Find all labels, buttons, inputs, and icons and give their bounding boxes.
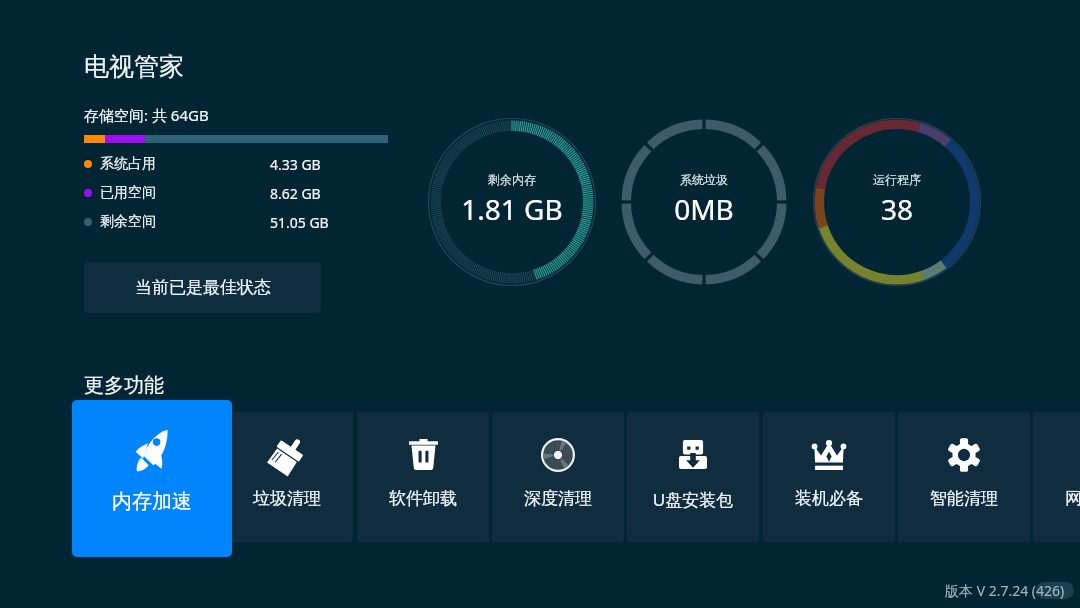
staticText: 版本 V 2.7.24 (426) (945, 581, 1065, 600)
button[interactable]: 深度清理 (492, 412, 624, 542)
staticText: 运行程序 (813, 172, 981, 187)
staticText: U盘安装包 (627, 488, 759, 511)
staticText: 51.05 GB (270, 213, 329, 232)
other: 智能清理 (948, 440, 980, 470)
staticText: 已用空间 (100, 184, 156, 202)
staticText: 更多功能 (84, 373, 164, 398)
staticText: 0MB (620, 190, 788, 228)
button[interactable]: 网络加速 (1033, 412, 1080, 542)
staticText: 装机必备 (763, 488, 895, 509)
button[interactable]: 软件卸载 (357, 412, 489, 542)
staticText: 电视管家 (84, 51, 184, 82)
staticText: 1.81 GB (428, 190, 596, 228)
staticText: 4.33 GB (270, 155, 321, 174)
staticText: 8.62 GB (270, 184, 321, 203)
other: U盘安装包 (679, 440, 707, 469)
other: 深度清理 (541, 438, 575, 472)
staticText: 剩余空间 (100, 213, 156, 231)
staticText: 智能清理 (898, 488, 1030, 509)
staticText: 系统占用 (100, 155, 156, 173)
button[interactable]: U盘安装包 (627, 412, 759, 542)
staticText: 存储空间: 共 64GB (84, 105, 209, 125)
other: 内存加速 (135, 429, 168, 472)
button[interactable]: 装机必备 (763, 412, 895, 542)
other: 软件卸载 (409, 439, 438, 470)
button[interactable]: 当前已是最佳状态 (84, 262, 321, 313)
staticText: 深度清理 (492, 488, 624, 509)
other: 垃圾清理 (270, 436, 305, 473)
staticText: 系统垃圾 (620, 172, 788, 187)
staticText: 软件卸载 (357, 488, 489, 509)
staticText: 剩余内存 (428, 172, 596, 187)
staticText: 当前已是最佳状态 (135, 277, 271, 298)
staticText: 内存加速 (72, 489, 232, 514)
button[interactable]: 智能清理 (898, 412, 1030, 542)
staticText: 38 (813, 190, 981, 228)
button[interactable]: 内存加速 (72, 400, 232, 557)
staticText: 网络加速 (1033, 488, 1080, 509)
staticText: 垃圾清理 (221, 488, 353, 509)
other: 装机必备 (812, 439, 846, 470)
button[interactable]: 垃圾清理 (221, 412, 353, 542)
